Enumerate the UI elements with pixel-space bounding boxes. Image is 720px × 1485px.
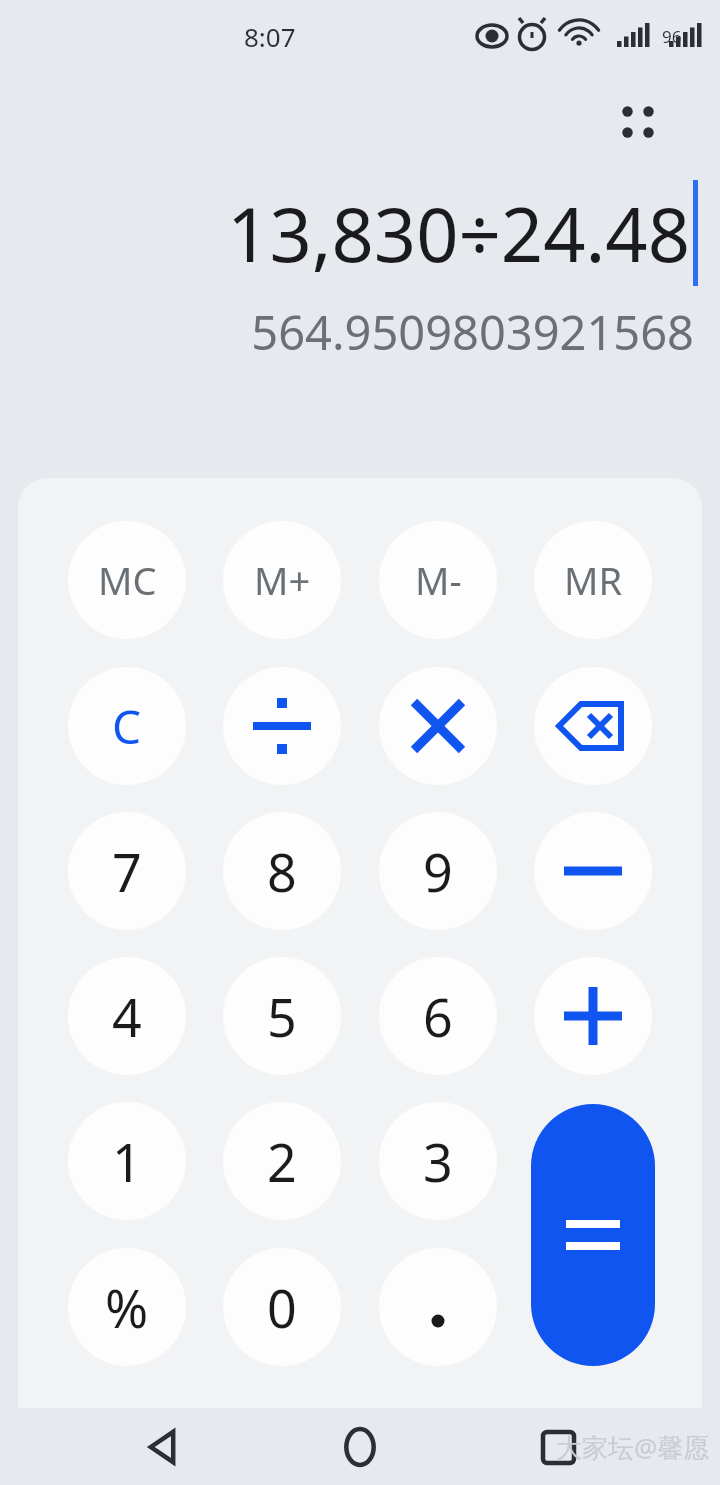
- staticText: 2: [267, 1126, 297, 1197]
- button[interactable]: 1: [68, 1102, 186, 1220]
- button[interactable]: 9: [379, 812, 497, 930]
- button[interactable]: %: [68, 1248, 186, 1366]
- staticText: MC: [98, 554, 157, 606]
- button[interactable]: MR: [534, 521, 652, 639]
- button[interactable]: M-: [379, 521, 497, 639]
- button[interactable]: 5: [223, 957, 341, 1075]
- button[interactable]: 4: [68, 957, 186, 1075]
- staticText: C: [112, 695, 142, 758]
- staticText: 7: [112, 836, 142, 907]
- button[interactable]: Equals: [531, 1104, 655, 1366]
- staticText: 1: [112, 1126, 142, 1197]
- button[interactable]: 8: [223, 812, 341, 930]
- button[interactable]: 3: [379, 1102, 497, 1220]
- staticText: M-: [415, 554, 462, 606]
- button[interactable]: C: [68, 667, 186, 785]
- staticText: 3: [423, 1126, 453, 1197]
- staticText: 9: [423, 836, 453, 907]
- button[interactable]: 0: [223, 1248, 341, 1366]
- button[interactable]: 7: [68, 812, 186, 930]
- button[interactable]: MC: [68, 521, 186, 639]
- button[interactable]: Plus: [534, 957, 652, 1075]
- button[interactable]: Backspace: [534, 667, 652, 785]
- staticText: 0: [267, 1272, 297, 1343]
- button[interactable]: More options: [612, 96, 664, 148]
- staticText: 6: [423, 981, 453, 1052]
- staticText: 13,830÷24.48: [227, 183, 690, 284]
- button[interactable]: Minus: [534, 812, 652, 930]
- button[interactable]: Decimal point: [379, 1248, 497, 1366]
- button[interactable]: 2: [223, 1102, 341, 1220]
- staticText: M+: [254, 554, 311, 606]
- button[interactable]: Home: [324, 1411, 396, 1483]
- button[interactable]: Multiply: [379, 667, 497, 785]
- staticText: 4: [112, 981, 142, 1052]
- staticText: MR: [564, 554, 623, 606]
- staticText: 8:07: [244, 19, 296, 54]
- staticText: 5: [267, 981, 297, 1052]
- staticText: 8: [267, 836, 297, 907]
- button[interactable]: M+: [223, 521, 341, 639]
- button[interactable]: Back: [126, 1411, 198, 1483]
- staticText: 大家坛@馨愿: [556, 1429, 710, 1465]
- staticText: %: [105, 1272, 149, 1343]
- button[interactable]: Divide: [223, 667, 341, 785]
- button[interactable]: 6: [379, 957, 497, 1075]
- staticText: 96: [662, 25, 682, 48]
- staticText: 564.9509803921568: [0, 300, 694, 364]
- button[interactable]: Recents: [522, 1411, 594, 1483]
